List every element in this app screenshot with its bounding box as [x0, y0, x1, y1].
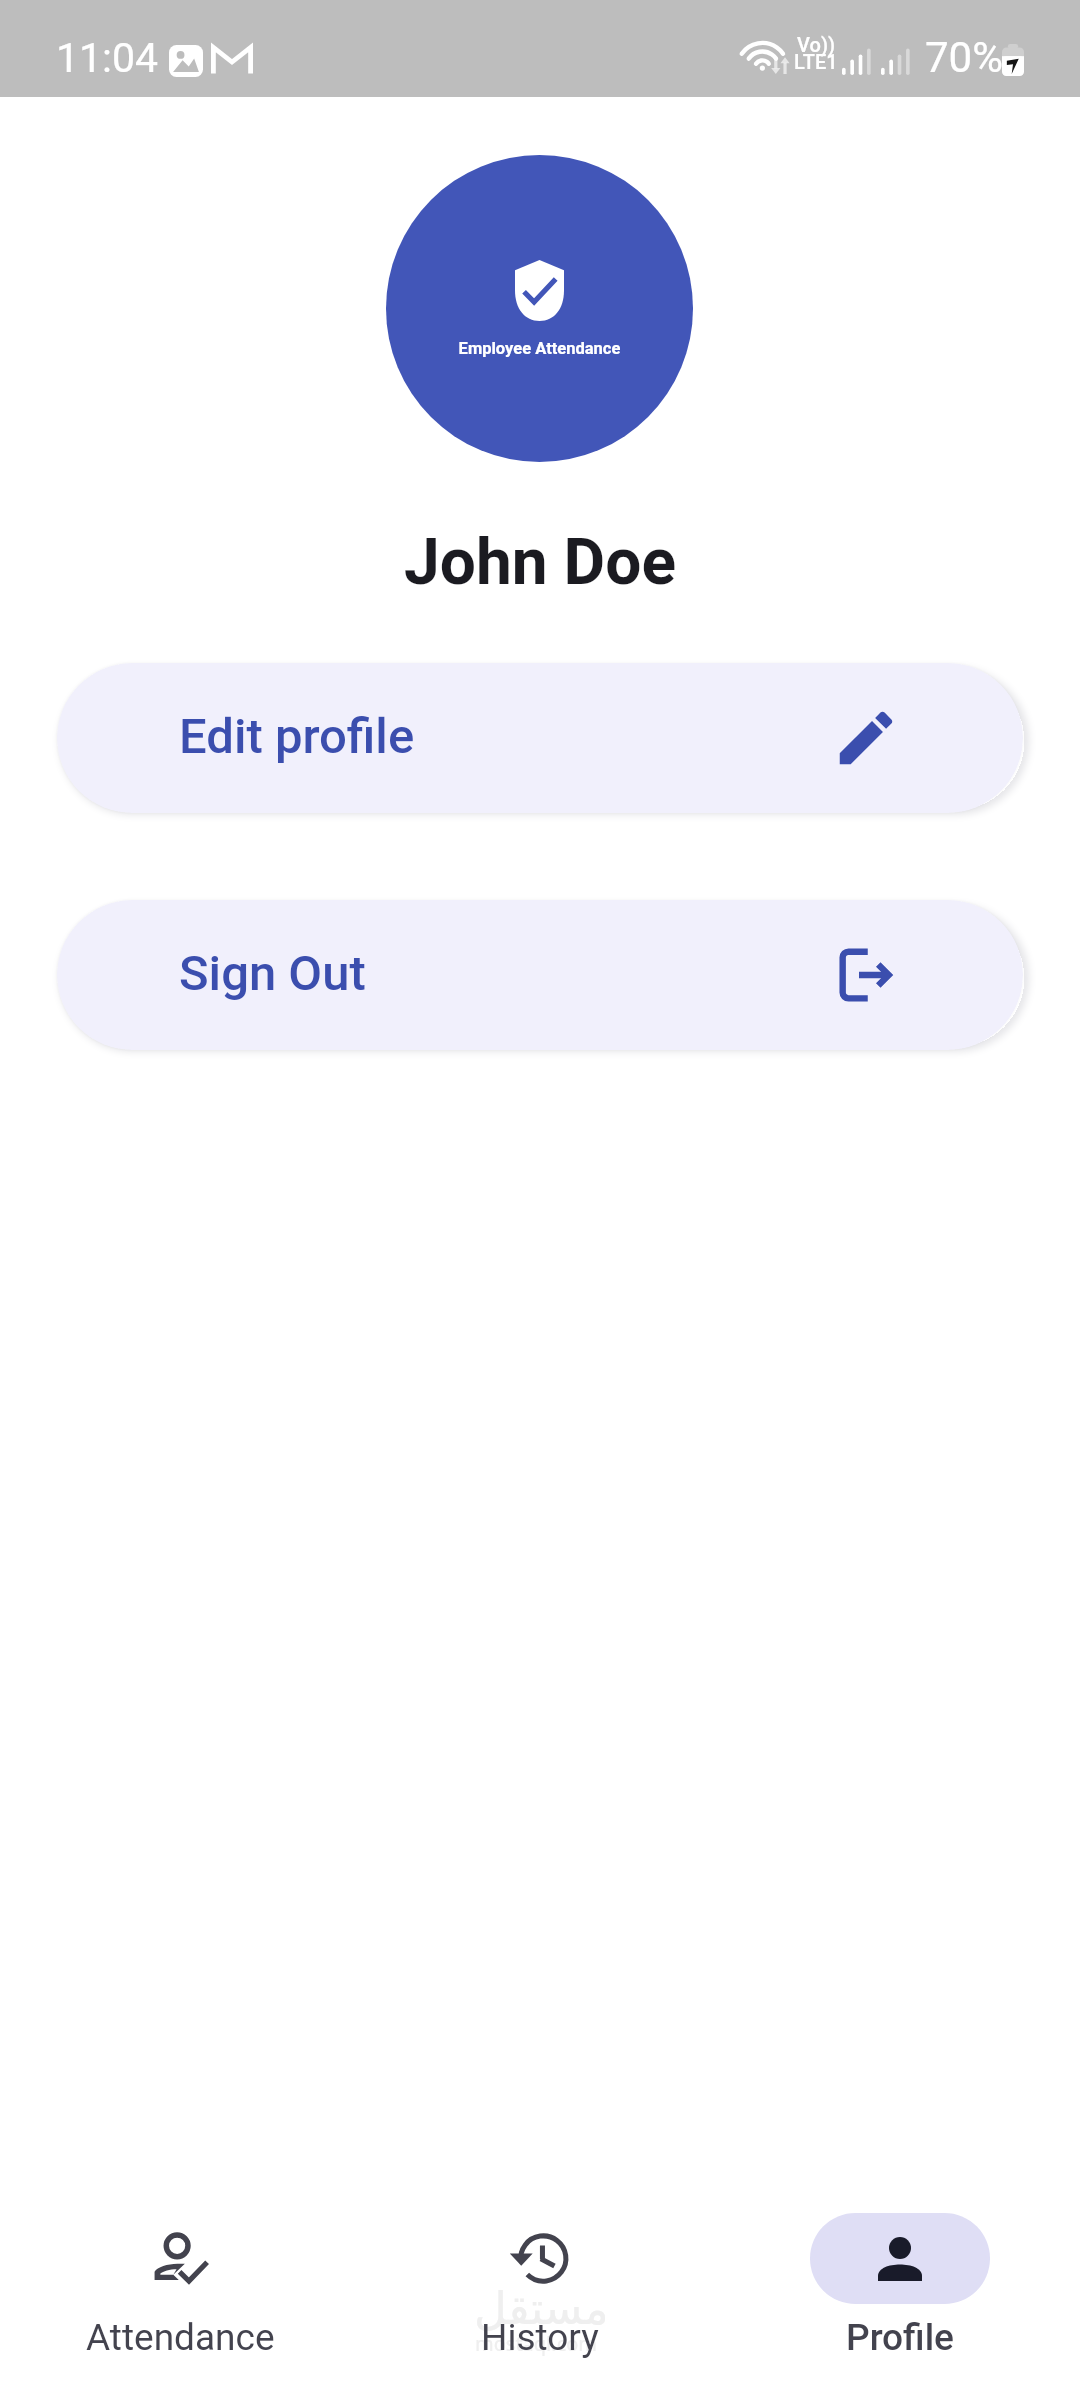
button[interactable]: Attendance: [0, 2185, 360, 2359]
staticText: 70%: [925, 33, 1003, 82]
staticText: History: [481, 2316, 599, 2359]
button[interactable]: Sign out: [57, 900, 1023, 1050]
staticText: 11:04: [56, 34, 159, 82]
staticText: Employee Attendance: [386, 339, 693, 358]
staticText: LTE1: [794, 50, 838, 73]
staticText: Vo)): [797, 33, 836, 56]
staticText: Edit profile: [179, 708, 415, 765]
staticText: mostaql.com: [475, 2330, 598, 2357]
staticText: مستقل: [474, 2282, 609, 2334]
staticText: Profile: [846, 2316, 954, 2359]
staticText: John Doe: [0, 525, 1080, 600]
button[interactable]: Edit profile: [57, 663, 1023, 813]
button[interactable]: History: [360, 2185, 720, 2359]
staticText: Attendance: [86, 2316, 275, 2359]
button[interactable]: Profile: [720, 2185, 1080, 2359]
staticText: Sign Out: [179, 945, 366, 1002]
